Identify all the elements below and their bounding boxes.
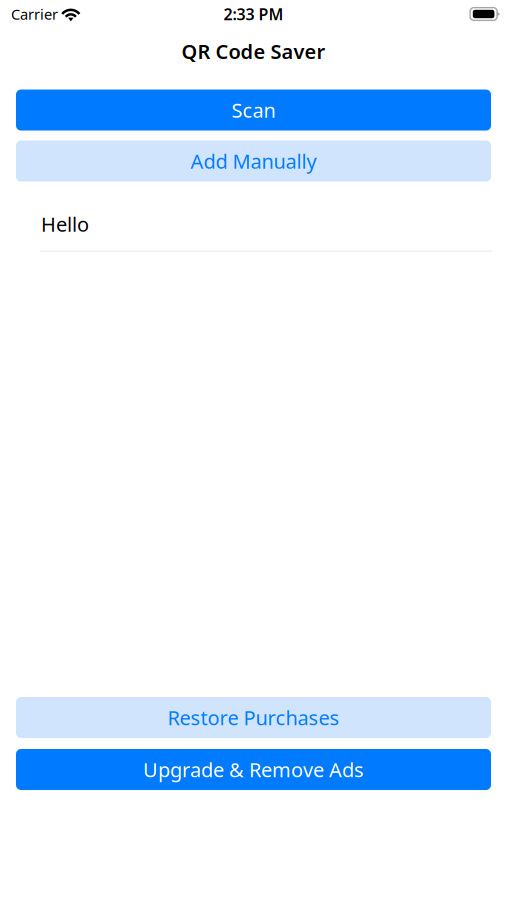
staticText: Carrier (11, 4, 58, 24)
staticText: 2:33 PM (223, 3, 283, 25)
button[interactable]: Scan (16, 90, 491, 131)
staticText: Upgrade & Remove Ads (143, 756, 364, 783)
button[interactable]: Upgrade & Remove Ads (16, 749, 491, 790)
button[interactable]: Restore Purchases (16, 697, 491, 738)
button[interactable]: Hello (0, 198, 507, 251)
staticText: Restore Purchases (167, 704, 339, 731)
staticText: Add Manually (190, 148, 316, 174)
staticText: Scan (231, 97, 275, 123)
staticText: Hello (41, 211, 89, 237)
staticText: QR Code Saver (181, 38, 325, 65)
button[interactable]: Add Manually (16, 141, 491, 182)
